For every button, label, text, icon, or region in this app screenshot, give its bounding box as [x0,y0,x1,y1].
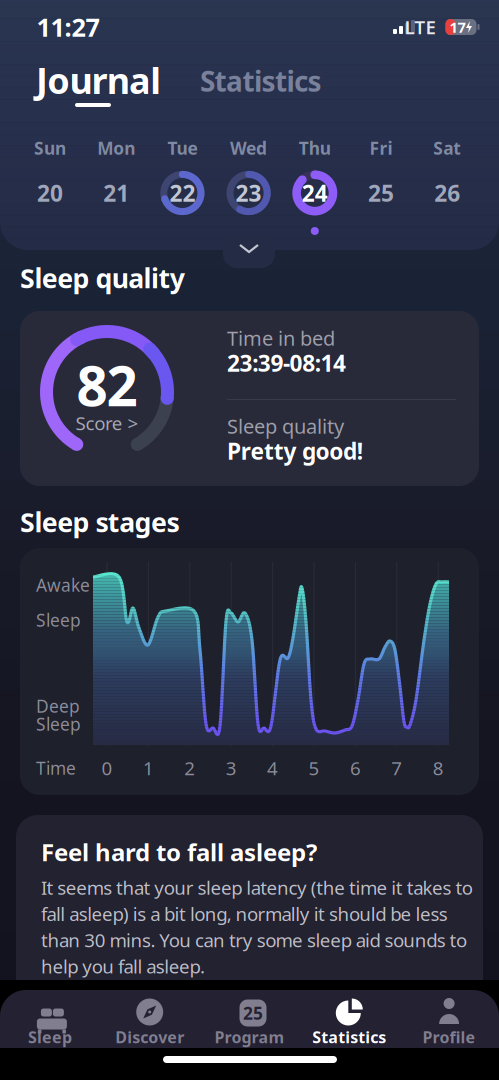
staticText: 3 [226,756,237,780]
staticText: Mon [97,136,135,159]
staticText: Sleep quality [227,413,344,439]
staticText: 24 [302,178,328,208]
staticText: help you fall asleep. [41,954,205,979]
staticText: 6 [350,756,361,780]
staticText: Profile [423,1026,476,1048]
staticText: 22 [169,178,195,208]
staticText: Awake [36,573,90,596]
button[interactable]: Statistics [304,996,394,1052]
staticText: Sleep [36,712,81,735]
staticText: Fri [369,136,392,159]
staticText: Statistics [312,1026,386,1048]
button[interactable]: Discover [105,996,195,1052]
staticText: Pretty good! [227,436,363,466]
staticText: 26 [434,178,460,208]
staticText: 23 [236,178,262,208]
button[interactable]: Wed [216,136,282,240]
staticText: Deep [36,694,80,717]
staticText: 20 [37,178,63,208]
staticText: Thu [299,136,331,159]
staticText: 2 [184,756,195,780]
button[interactable]: Mon [83,136,149,240]
button[interactable]: Sun [17,136,83,240]
staticText: fall asleep) is a bit long, normally it … [41,901,448,926]
staticText: Sleep quality [20,260,185,296]
staticText: 4 [267,756,278,780]
staticText: Sat [433,136,461,159]
staticText: Discover [115,1026,184,1048]
staticText: 17 [449,17,465,37]
button[interactable]: Journal [36,61,206,111]
staticText: It seems that your sleep latency (the ti… [41,875,473,900]
button[interactable]: Sat [414,136,480,240]
staticText: 8 [433,756,444,780]
staticText: 7 [391,756,402,780]
staticText: 25 [243,1001,263,1024]
staticText: 21 [103,178,129,208]
staticText: Feel hard to fall asleep? [41,836,317,868]
staticText: 1 [143,756,154,780]
staticText: Time in bed [227,325,335,351]
staticText: Wed [230,136,267,159]
button[interactable]: Sleep [5,996,95,1052]
staticText: Program [214,1026,284,1048]
staticText: Sun [34,136,66,159]
staticText: 0 [101,756,112,780]
button[interactable]: Feel hard to fall asleep? [16,815,483,1000]
staticText: than 30 mins. You can try some sleep aid… [41,928,467,952]
staticText: 23:39-08:14 [227,348,346,378]
staticText: Journal [36,56,161,104]
button[interactable]: Fri [348,136,414,240]
staticText: Sleep [28,1026,72,1048]
staticText: Sleep [36,608,81,631]
staticText: 5 [308,756,319,780]
button[interactable] [223,234,275,268]
button[interactable]: Thu [282,136,348,240]
button[interactable]: Tue [149,136,215,240]
staticText: 11:27 [36,10,99,44]
staticText: 25 [368,178,394,208]
staticText: Tue [167,136,197,159]
staticText: Sleep stages [20,504,179,540]
button[interactable]: Statistics [200,66,350,96]
staticText: LTE [404,15,435,39]
button[interactable]: 25 [204,996,294,1052]
staticText: Statistics [200,62,321,100]
button[interactable]: Profile [404,996,494,1052]
button[interactable]: 82 [20,311,479,486]
staticText: 82 [76,349,137,421]
staticText: Time [36,756,76,779]
staticText: Score > [76,411,138,435]
